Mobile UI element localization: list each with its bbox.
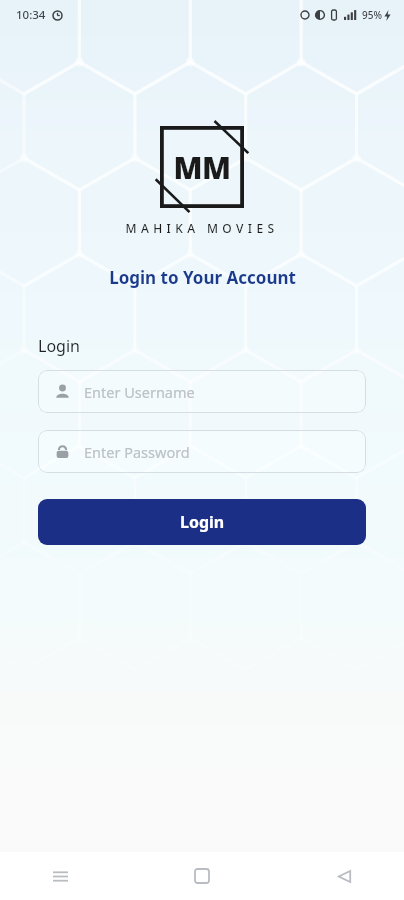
button[interactable]: Home xyxy=(178,852,226,900)
staticText: Enter Password xyxy=(84,442,190,462)
staticText: MAHIKA MOVIES xyxy=(125,220,279,236)
staticText: MM xyxy=(173,147,231,188)
button[interactable]: Enter Username xyxy=(38,370,366,413)
button[interactable]: Enter Password xyxy=(38,430,366,473)
button[interactable]: Recent apps xyxy=(36,852,84,900)
button[interactable]: Login xyxy=(38,499,366,545)
staticText: Enter Username xyxy=(84,382,195,402)
staticText: Login to Your Account xyxy=(109,266,296,289)
staticText: Login xyxy=(180,511,225,533)
button[interactable]: Back xyxy=(320,852,368,900)
staticText: 10:34 xyxy=(16,7,46,23)
staticText: 95% xyxy=(362,8,382,22)
staticText: Login xyxy=(38,335,80,357)
